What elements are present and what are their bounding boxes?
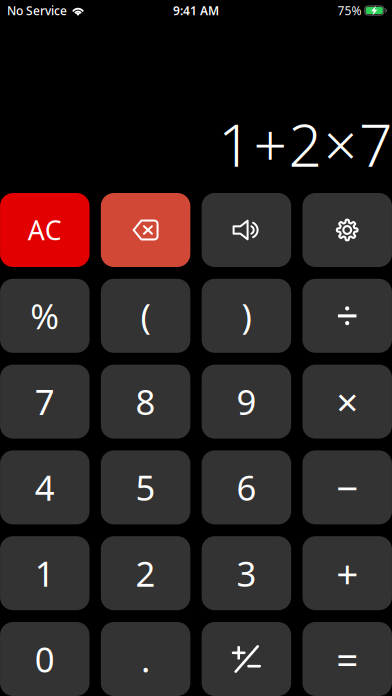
button[interactable]: Divide [302,279,392,353]
staticText: 1 [35,550,55,596]
staticText: 1 [218,105,251,183]
button[interactable]: 4 [0,450,90,524]
staticText: . [141,636,150,682]
staticText: 5 [136,464,156,510]
staticText: ) [241,293,251,339]
staticText: 0 [35,636,55,682]
staticText: 4 [35,464,55,510]
staticText: × [336,376,358,427]
button[interactable]: 8 [101,365,190,439]
button[interactable]: . [101,622,190,696]
button[interactable]: Settings [302,193,392,267]
staticText: + [336,547,358,599]
staticText: − [336,462,358,513]
button[interactable]: + [302,536,392,610]
button[interactable]: × [302,365,392,439]
button[interactable]: 2 [101,536,190,610]
button[interactable]: 1 [0,536,90,610]
button[interactable]: − [302,450,392,524]
button[interactable]: 3 [202,536,291,610]
button[interactable]: 6 [202,450,291,524]
staticText: 8 [136,379,156,425]
button[interactable]: Sound [202,193,291,267]
staticText: No Service [7,2,67,18]
staticText: 7 [35,379,55,425]
staticText: 3 [236,550,256,596]
staticText: 6 [236,464,256,510]
button[interactable]: = [302,622,392,696]
staticText: 2 [136,550,156,596]
button[interactable]: 5 [101,450,190,524]
staticText: 2 [289,105,322,183]
button[interactable]: AC [0,193,90,267]
staticText: + [253,105,286,183]
staticText: 9:41 AM [173,2,219,18]
button[interactable]: 9 [202,365,291,439]
button[interactable]: % [0,279,90,353]
staticText: 7 [359,105,392,183]
staticText: 9 [236,379,256,425]
staticText: % [30,293,59,339]
button[interactable]: 7 [0,365,90,439]
button[interactable]: ) [202,279,291,353]
button[interactable]: ( [101,279,190,353]
button[interactable]: Plus minus [202,622,291,696]
staticText: AC [28,212,62,248]
button[interactable]: Delete [101,193,190,267]
staticText: ( [141,293,151,339]
staticText: 75% [337,2,361,18]
staticText: = [336,633,358,685]
button[interactable]: 0 [0,622,90,696]
staticText: × [324,105,357,183]
